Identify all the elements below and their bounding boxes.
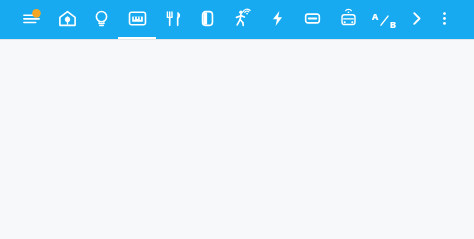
button[interactable]: More options xyxy=(430,0,458,39)
button[interactable]: Vehicle xyxy=(330,0,366,39)
staticText: B xyxy=(390,18,396,30)
button[interactable]: Contrast xyxy=(190,0,224,39)
button[interactable]: Activity xyxy=(224,0,260,39)
button[interactable]: More tabs xyxy=(402,0,430,39)
button[interactable]: Home xyxy=(50,0,84,39)
button[interactable]: News xyxy=(12,0,50,39)
button[interactable]: Photos xyxy=(118,0,156,39)
button[interactable]: A over B xyxy=(366,0,402,39)
button[interactable]: Card xyxy=(294,0,330,39)
button[interactable]: Energy xyxy=(260,0,294,39)
button[interactable]: Lights xyxy=(84,0,118,39)
staticText: A xyxy=(372,10,379,22)
button[interactable]: Dining xyxy=(156,0,190,39)
